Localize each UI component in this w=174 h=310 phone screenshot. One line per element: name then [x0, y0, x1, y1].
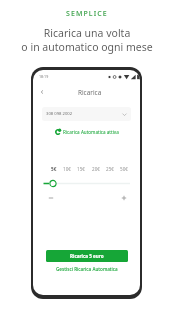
button[interactable]: Gestisci Ricarica Automatica — [33, 266, 140, 272]
staticText: 25€ — [106, 166, 114, 172]
button[interactable]: Ricarica 5 euro — [46, 250, 128, 262]
staticText: Ricarica 5 euro — [70, 253, 104, 259]
staticText: SEMPLICE — [66, 9, 108, 19]
staticText: Ricarica Automatica attiva — [63, 129, 119, 135]
staticText: 50€ — [120, 166, 128, 172]
staticText: 15€ — [77, 166, 85, 172]
staticText: 308 098 2002 — [46, 111, 73, 117]
button[interactable]: Increase — [120, 194, 128, 202]
staticText: 10€ — [63, 166, 71, 172]
staticText: 18:19 — [39, 74, 49, 79]
button[interactable]: Back — [37, 87, 47, 97]
staticText: Ricarica una volta o in automatico ogni … — [21, 26, 153, 54]
staticText: 5€ — [51, 166, 57, 172]
staticText: Ricarica — [78, 88, 102, 97]
staticText: Gestisci Ricarica Automatica — [56, 266, 118, 272]
staticText: 20€ — [92, 166, 100, 172]
button[interactable]: 308 098 2002 — [42, 107, 131, 121]
button[interactable]: Decrease — [47, 194, 55, 202]
